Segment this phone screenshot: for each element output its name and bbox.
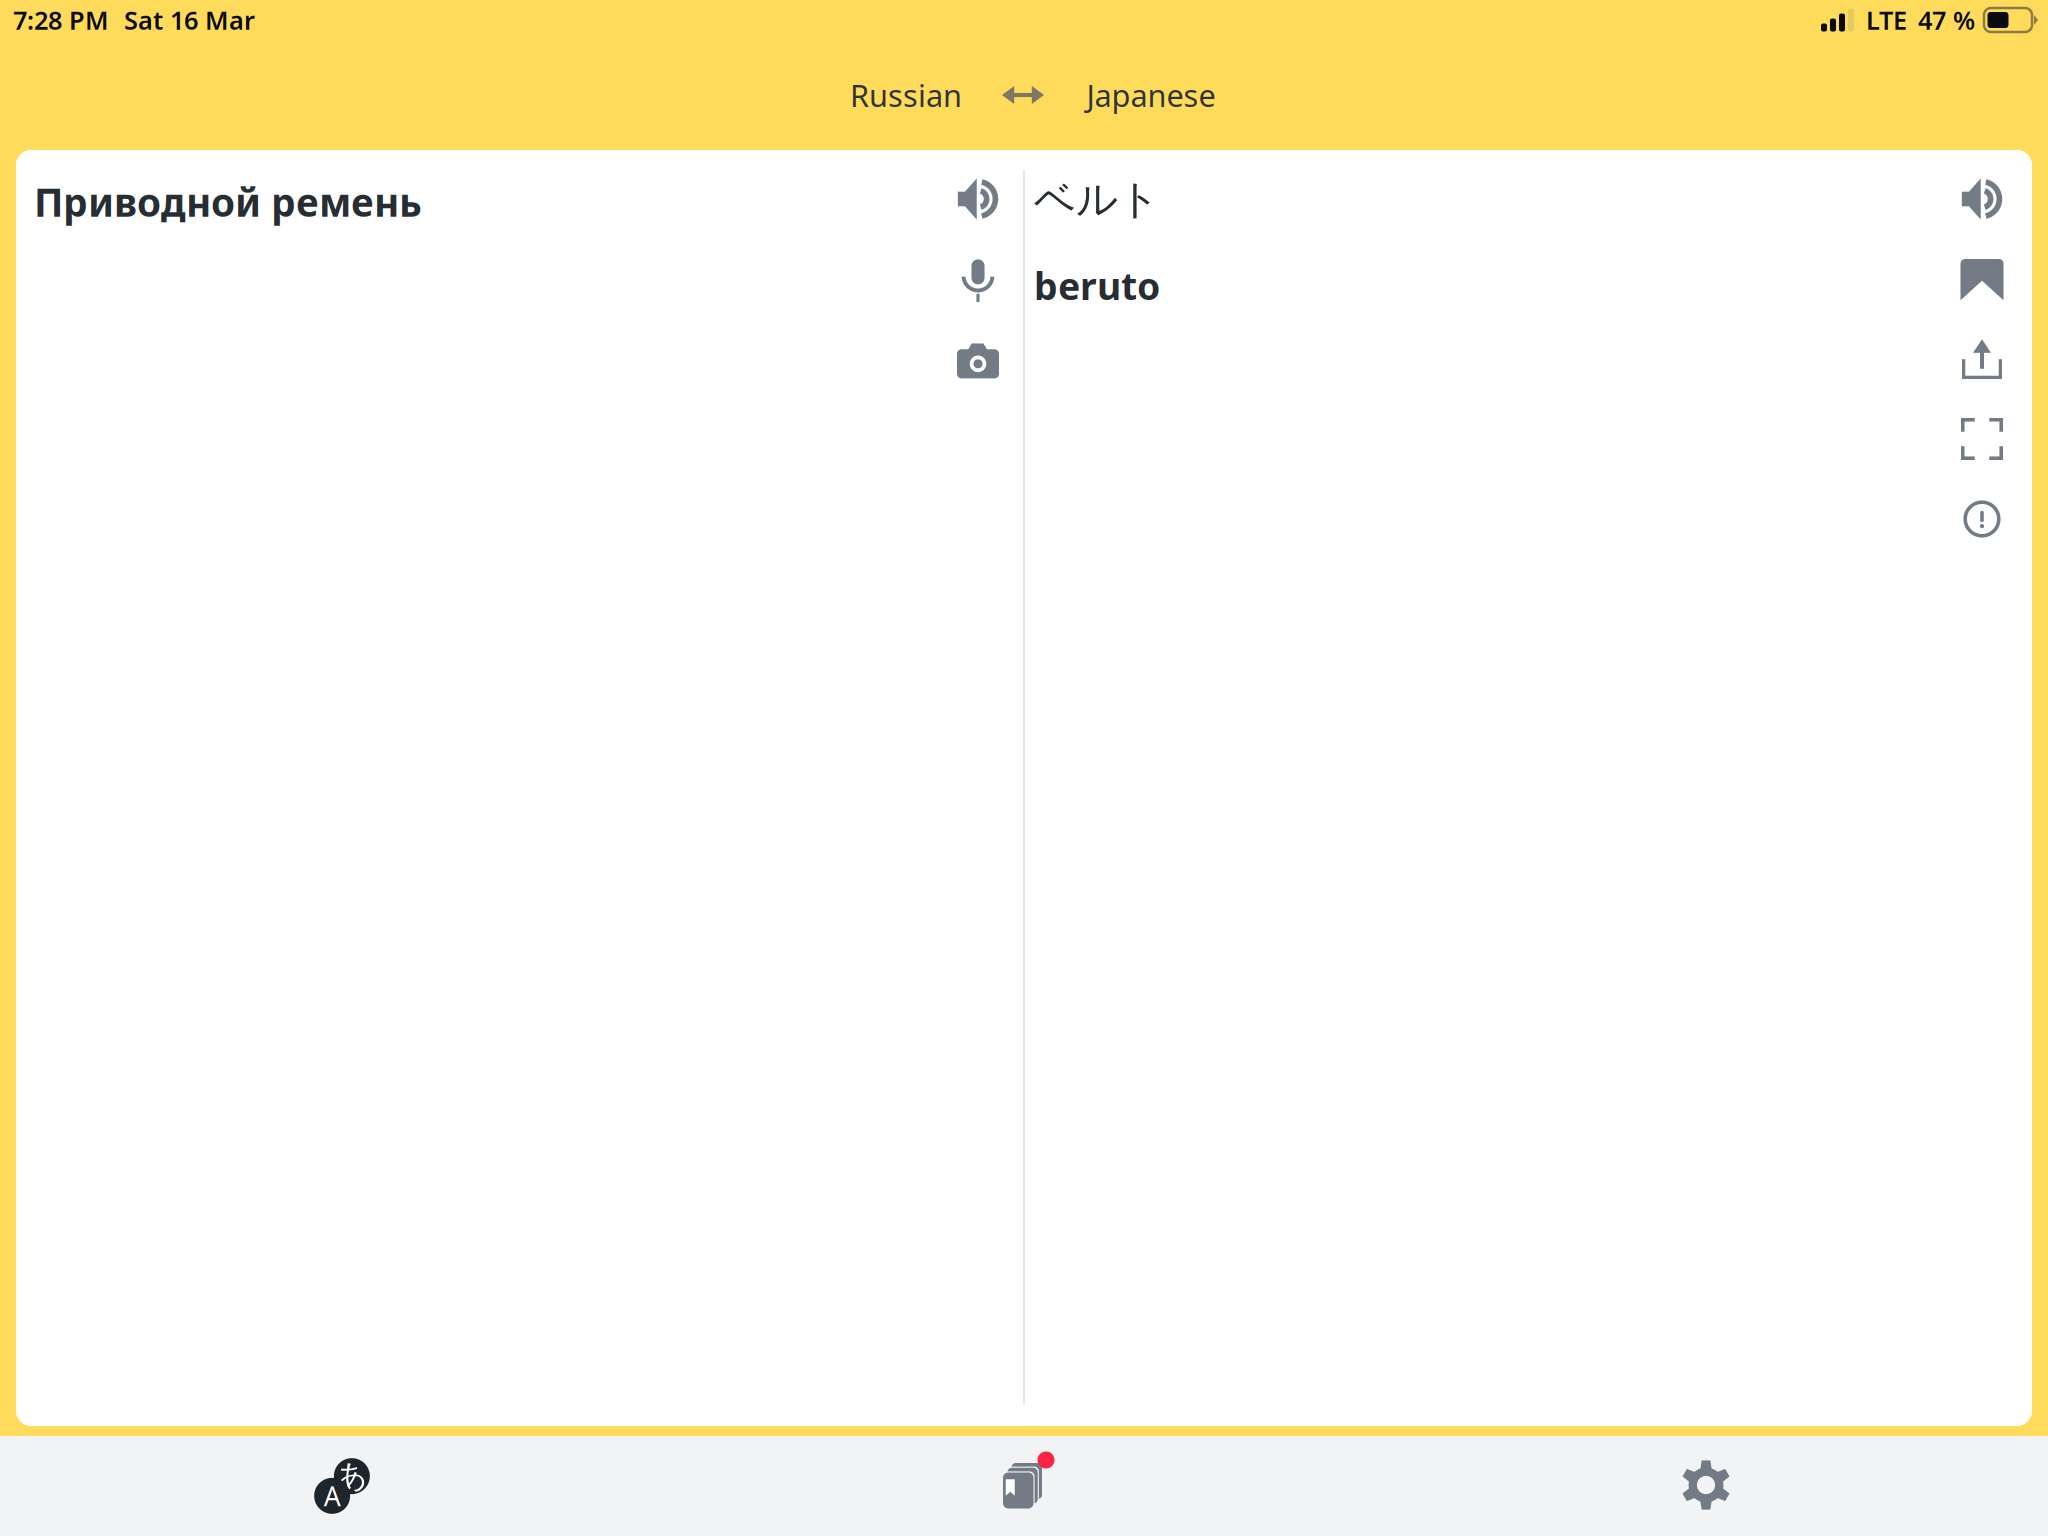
staticText: beruto [1034, 261, 1160, 310]
staticText: Приводной ремень [34, 176, 422, 227]
staticText: Russian [850, 75, 962, 115]
staticText: ベルト [1034, 174, 1160, 225]
button[interactable]: Swap languages [982, 73, 1064, 117]
staticText: Japanese [1086, 75, 1215, 115]
staticText: LTE [1866, 3, 1907, 37]
button[interactable]: Settings [1365, 1436, 2047, 1536]
staticText: あ [336, 1457, 367, 1495]
button[interactable]: Japanese [1064, 73, 1238, 117]
button[interactable]: Saved phrases [683, 1436, 1365, 1536]
button[interactable]: Voice input [937, 239, 1019, 319]
staticText: 47 % [1918, 3, 1975, 37]
button[interactable]: Speak source [937, 159, 1019, 239]
button[interactable]: Translate [1, 1436, 683, 1536]
button[interactable]: Share [1941, 319, 2023, 399]
button[interactable]: Bookmark [1941, 239, 2023, 319]
staticText: Sat 16 Mar [124, 3, 255, 37]
button[interactable]: Report problem [1941, 479, 2023, 559]
staticText: A [324, 1478, 341, 1514]
staticText: 7:28 PM [13, 3, 109, 37]
button[interactable]: Russian [830, 73, 982, 117]
button[interactable]: Full screen [1941, 399, 2023, 479]
button[interactable]: Speak translation [1941, 159, 2023, 239]
button[interactable]: Camera input [937, 319, 1019, 399]
